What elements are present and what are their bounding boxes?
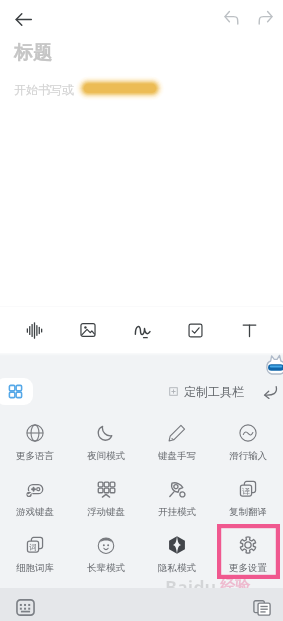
- button[interactable]: 游戏键盘: [0, 461, 70, 517]
- button[interactable]: 更多语言: [0, 405, 70, 461]
- staticText: 标题: [14, 41, 52, 65]
- staticText: Baidu: [165, 575, 217, 600]
- staticText: 浮动键盘: [87, 506, 125, 517]
- button[interactable]: 长辈模式: [70, 517, 141, 573]
- button[interactable]: 定制工具栏: [169, 382, 244, 400]
- staticText: 键盘手写: [158, 450, 196, 461]
- staticText: 长辈模式: [87, 562, 125, 573]
- staticText: 更多设置: [229, 562, 267, 573]
- button[interactable]: Clipboard: [248, 595, 276, 620]
- button[interactable]: Insert image: [68, 310, 108, 350]
- button[interactable]: Checklist: [175, 310, 215, 350]
- button[interactable]: 开挂模式: [141, 461, 212, 517]
- staticText: 词: [29, 542, 37, 552]
- staticText: 开挂模式: [158, 506, 196, 517]
- staticText: 复制翻译: [229, 506, 267, 517]
- button[interactable]: Handwriting: [122, 310, 162, 350]
- staticText: 夜间模式: [87, 450, 125, 461]
- button[interactable]: Hide keyboard: [258, 379, 283, 404]
- staticText: 隐私模式: [158, 562, 196, 573]
- staticText: 更多语言: [16, 450, 54, 461]
- button[interactable]: Back: [7, 3, 39, 35]
- button[interactable]: All apps: [0, 378, 33, 405]
- button[interactable]: Redo: [250, 2, 280, 32]
- button[interactable]: 更多设置: [212, 517, 283, 573]
- staticText: 游戏键盘: [16, 506, 54, 517]
- staticText: 译: [242, 486, 250, 496]
- button[interactable]: Keyboard: [11, 595, 39, 620]
- button[interactable]: 隐私模式: [141, 517, 212, 573]
- button[interactable]: 译: [212, 461, 283, 517]
- staticText: 滑行输入: [229, 450, 267, 461]
- staticText: 经验: [220, 577, 250, 596]
- staticText: 定制工具栏: [184, 384, 244, 399]
- button[interactable]: Undo: [216, 2, 246, 32]
- staticText: 开始书写或: [14, 82, 74, 97]
- button[interactable]: Text format: [229, 310, 269, 350]
- button[interactable]: Voice input: [14, 310, 54, 350]
- button[interactable]: 滑行输入: [212, 405, 283, 461]
- button[interactable]: 夜间模式: [70, 405, 141, 461]
- button[interactable]: 浮动键盘: [70, 461, 141, 517]
- staticText: 细胞词库: [16, 562, 54, 573]
- button[interactable]: 键盘手写: [141, 405, 212, 461]
- button[interactable]: 词: [0, 517, 70, 573]
